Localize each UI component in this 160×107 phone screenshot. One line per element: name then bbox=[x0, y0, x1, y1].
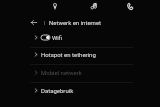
staticText: Netwerk en internet bbox=[49, 19, 102, 26]
button[interactable]: Media bbox=[89, 1, 99, 11]
button[interactable]: Wifi bbox=[0, 29, 160, 46]
button[interactable]: Datagebruik bbox=[0, 82, 160, 99]
staticText: Datagebruik bbox=[41, 87, 74, 94]
button[interactable]: Navigation bbox=[50, 1, 60, 11]
button[interactable]: Back bbox=[28, 17, 39, 28]
staticText: Hotspot en tethering bbox=[41, 51, 96, 58]
button[interactable]: Phone bbox=[125, 1, 135, 11]
button[interactable]: Mobiel netwerk bbox=[0, 64, 160, 81]
staticText: Mobiel netwerk bbox=[41, 69, 82, 76]
staticText: Wifi bbox=[52, 34, 63, 41]
button[interactable]: Hotspot en tethering bbox=[0, 46, 160, 63]
